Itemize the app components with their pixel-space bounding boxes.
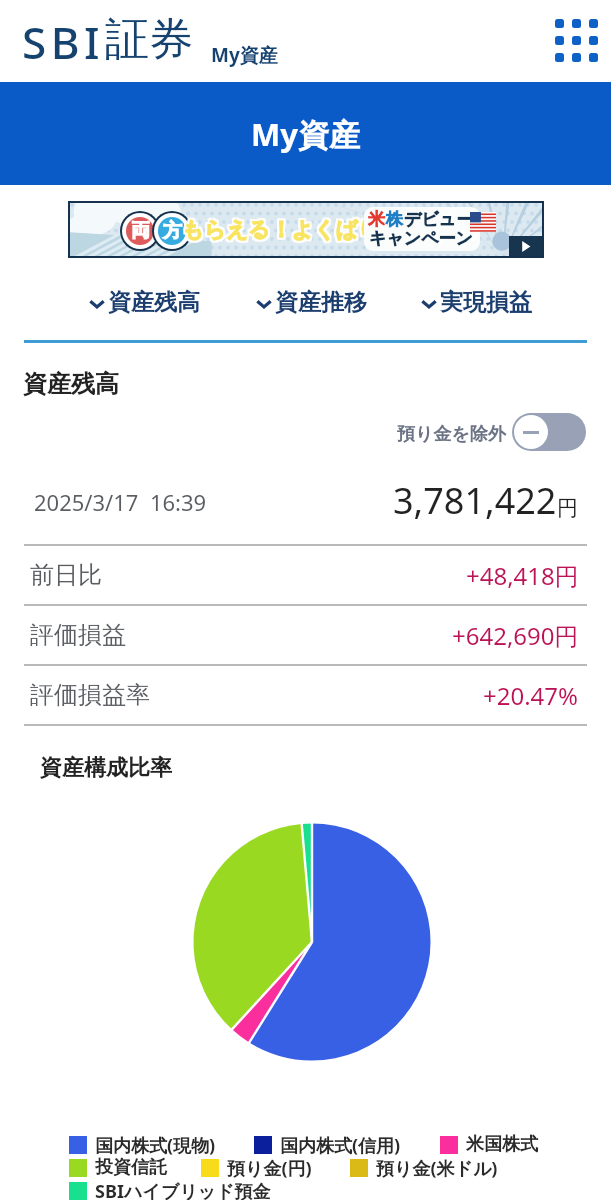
staticText: もらえる！よくばり [180, 216, 378, 243]
staticText: もらえる！よくばり [180, 218, 378, 245]
staticText: 国内株式(現物) [95, 1133, 216, 1158]
staticText: 預り金(円) [227, 1156, 312, 1181]
button[interactable]: 評価損益 [0, 611, 611, 659]
staticText: 米国株式 [466, 1133, 538, 1156]
button[interactable]: Exclude deposits toggle [512, 413, 586, 451]
staticText: 証券 [105, 12, 193, 67]
button[interactable]: Menu [548, 12, 604, 68]
button[interactable]: 評価損益率 [0, 671, 611, 719]
button[interactable]: 預り金を除外 [397, 413, 586, 451]
staticText: 投資信託 [95, 1156, 167, 1179]
staticText: 3,781,422 [393, 476, 557, 525]
button[interactable]: 資産推移 [255, 288, 367, 317]
staticText: 米 [367, 208, 385, 231]
staticText: キャンペーン [368, 227, 479, 250]
button[interactable]: 前日比 [0, 551, 611, 599]
button[interactable]: 資産残高 [88, 288, 200, 317]
button[interactable]: 実現損益 [420, 288, 532, 317]
staticText: もらえる！よくばり [184, 216, 382, 243]
staticText: +48,418円 [466, 559, 579, 592]
staticText: もらえる！よくばり [182, 216, 380, 243]
staticText: デビュー [403, 208, 477, 231]
staticText: もらえる！よくばり [182, 216, 380, 243]
staticText: 米 [368, 209, 385, 230]
staticText: 円 [557, 495, 578, 521]
staticText: もらえる！よくばり [182, 218, 380, 245]
staticText: +642,690円 [452, 619, 579, 652]
staticText: 預り金(米ドル) [376, 1156, 498, 1181]
staticText: キャンペーン [369, 228, 473, 249]
staticText: 預り金を除外 [397, 423, 506, 446]
staticText: 方 [163, 219, 182, 243]
staticText: もらえる！よくばり [182, 214, 380, 241]
staticText: SBIハイブリッド預金 [95, 1179, 271, 1200]
staticText: もらえる！よくばり [180, 214, 378, 241]
staticText: 国内株式(信用) [280, 1133, 401, 1158]
staticText: 評価損益率 [30, 680, 150, 710]
staticText: 前日比 [30, 560, 102, 590]
staticText: 株 [385, 208, 403, 231]
staticText: 2025/3/17 16:39 [34, 487, 207, 517]
staticText: My資産 [211, 42, 278, 68]
staticText: もらえる！よくばり [184, 214, 382, 241]
staticText: 資産推移 [275, 288, 367, 317]
staticText: 実現損益 [440, 288, 532, 317]
staticText: 株 [386, 209, 403, 230]
staticText: 両 [131, 219, 150, 243]
button[interactable]: Campaign banner [70, 203, 542, 256]
staticText: 資産残高 [23, 369, 119, 399]
staticText: もらえる！よくばり [184, 218, 382, 245]
staticText: SBI [22, 12, 105, 72]
staticText: 評価損益 [30, 620, 126, 650]
staticText: 資産構成比率 [40, 754, 172, 782]
staticText: 資産残高 [108, 288, 200, 317]
staticText: My資産 [251, 113, 360, 155]
staticText: デビュー [404, 209, 474, 230]
staticText: +20.47% [483, 679, 579, 712]
